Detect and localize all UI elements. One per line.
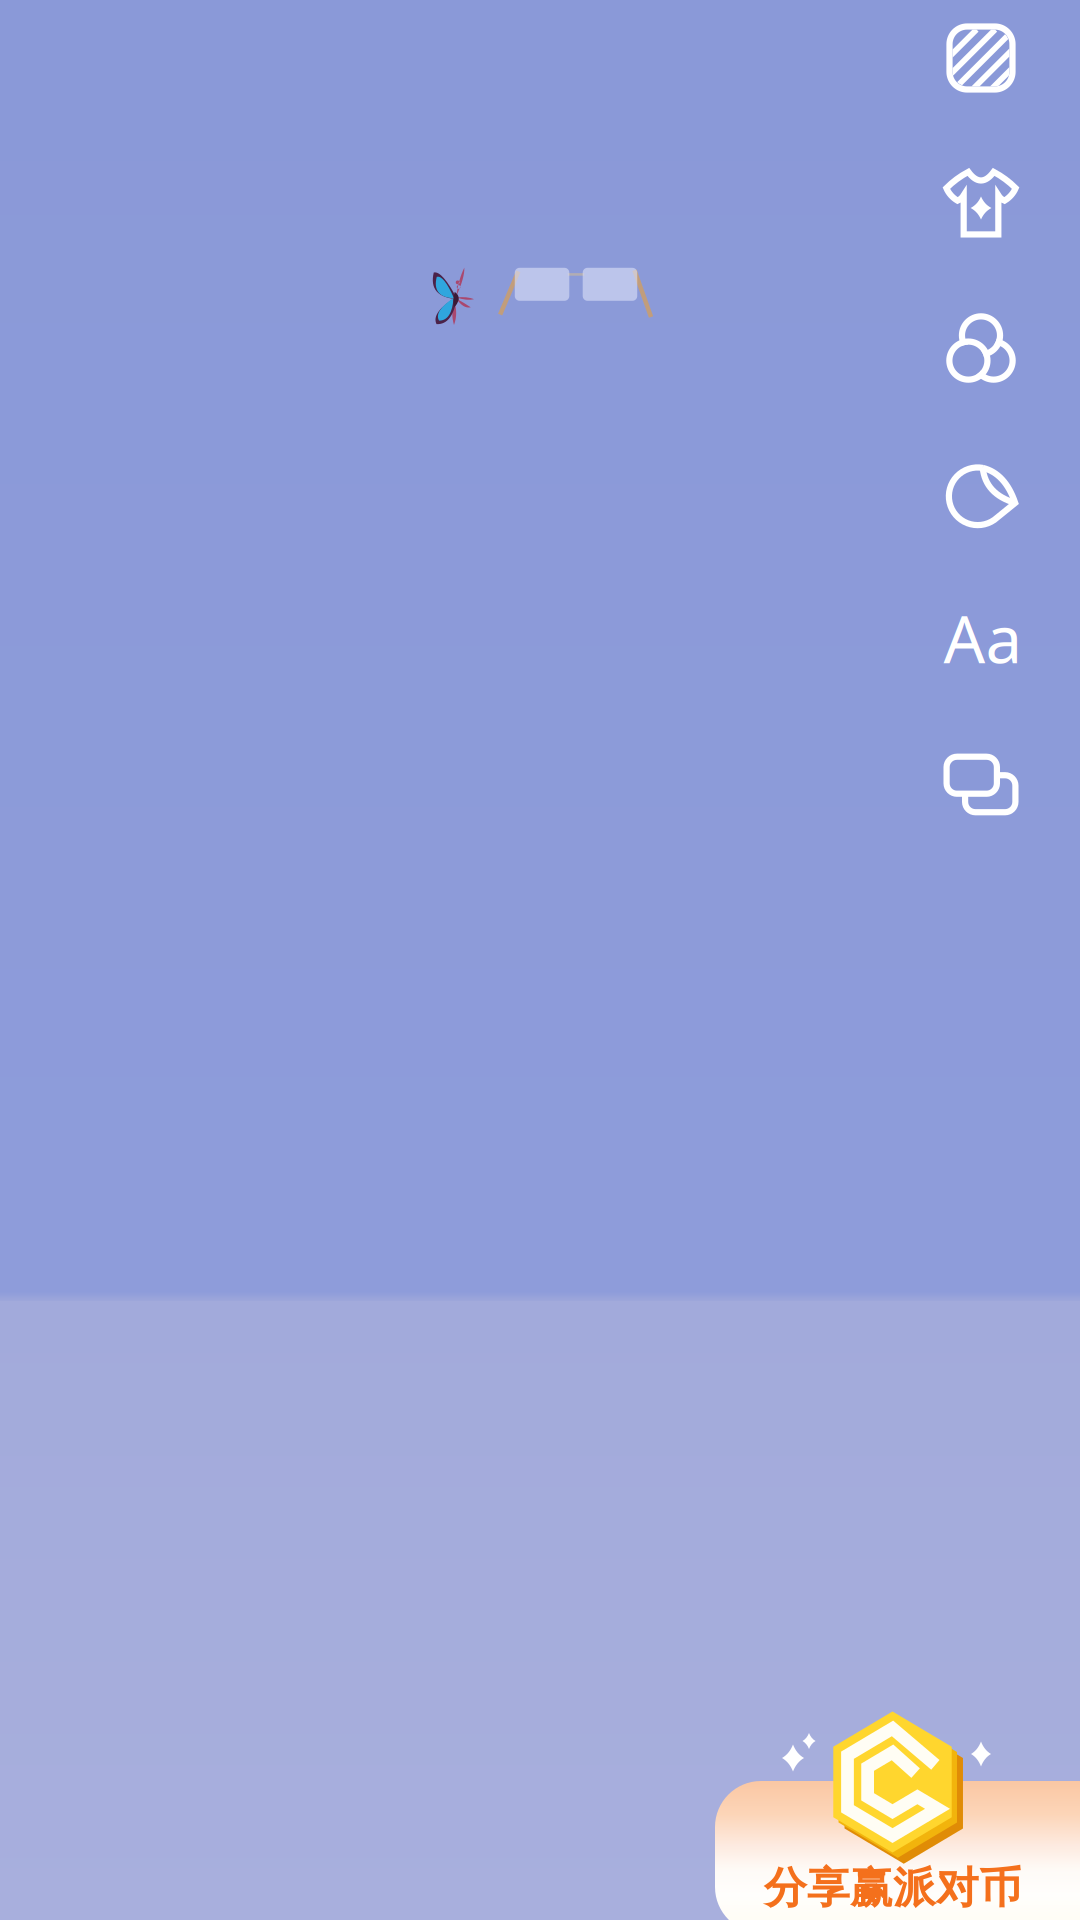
button[interactable]: Background <box>924 1 1037 114</box>
button[interactable]: Outfit <box>924 146 1037 259</box>
button[interactable]: 分享赢派对币 <box>0 0 1080 1920</box>
button[interactable]: Layers <box>924 726 1037 839</box>
staticText: Aa <box>943 595 1022 681</box>
staticText: 分享赢派对币 <box>764 1862 1022 1914</box>
button[interactable]: Filters <box>924 291 1037 404</box>
button[interactable]: Stickers <box>924 436 1037 549</box>
button[interactable]: Text <box>926 581 1039 694</box>
